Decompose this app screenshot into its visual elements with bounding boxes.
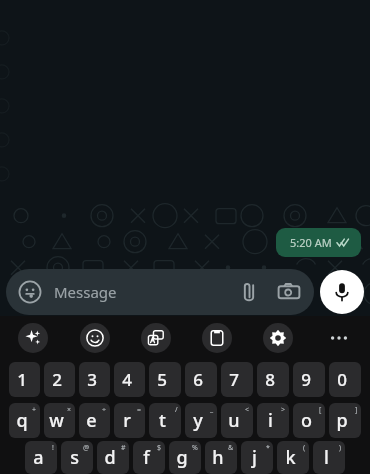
- staticText: w: [49, 408, 64, 433]
- staticText: *: [266, 443, 270, 453]
- staticText: 8: [265, 368, 275, 391]
- staticText: 5:20 AM: [290, 235, 332, 250]
- button[interactable]: 7: [221, 362, 253, 397]
- staticText: e: [86, 408, 97, 433]
- staticText: 5: [157, 368, 167, 391]
- button[interactable]: w: [44, 403, 75, 438]
- staticText: !: [52, 443, 54, 453]
- staticText: 6: [193, 368, 203, 391]
- button[interactable]: q: [9, 403, 40, 438]
- button[interactable]: Translate: [141, 323, 171, 353]
- staticText: 1: [17, 368, 27, 391]
- staticText: (: [303, 443, 306, 453]
- staticText: y: [193, 408, 203, 433]
- button[interactable]: i: [257, 403, 289, 438]
- button[interactable]: y: [185, 403, 217, 438]
- button[interactable]: o: [293, 403, 325, 438]
- staticText: t: [159, 408, 166, 433]
- staticText: l: [324, 445, 329, 470]
- button[interactable]: 8: [257, 362, 289, 397]
- staticText: 2: [52, 368, 62, 391]
- staticText: %: [192, 443, 198, 453]
- button[interactable]: 5:20 AM: [276, 228, 361, 257]
- button[interactable]: 4: [114, 362, 145, 397]
- button[interactable]: k: [277, 441, 309, 474]
- button[interactable]: j: [241, 441, 273, 474]
- staticText: 7: [229, 368, 239, 391]
- staticText: r: [123, 408, 131, 433]
- button[interactable]: Camera: [276, 279, 302, 305]
- staticText: ): [339, 443, 342, 453]
- button[interactable]: Stickers: [6, 269, 314, 315]
- button[interactable]: More options: [324, 323, 354, 353]
- staticText: g: [176, 445, 188, 470]
- staticText: p: [336, 408, 348, 433]
- staticText: /: [175, 405, 178, 415]
- button[interactable]: 2: [44, 362, 75, 397]
- staticText: k: [285, 445, 296, 470]
- staticText: [: [319, 405, 322, 415]
- button[interactable]: r: [114, 403, 145, 438]
- button[interactable]: 3: [79, 362, 110, 397]
- button[interactable]: Attach: [236, 279, 262, 305]
- button[interactable]: p: [329, 403, 361, 438]
- button[interactable]: Settings: [263, 323, 293, 353]
- button[interactable]: 9: [293, 362, 325, 397]
- button[interactable]: AI assist: [18, 323, 48, 353]
- button[interactable]: Emoji: [80, 323, 110, 353]
- staticText: >: [281, 405, 286, 415]
- staticText: 4: [122, 368, 132, 391]
- staticText: +: [32, 405, 37, 415]
- button[interactable]: g: [169, 441, 201, 474]
- button[interactable]: Voice message: [320, 270, 364, 314]
- staticText: q: [16, 408, 28, 433]
- staticText: _: [210, 405, 214, 415]
- staticText: $: [157, 443, 162, 453]
- button[interactable]: t: [149, 403, 181, 438]
- button[interactable]: Clipboard: [202, 323, 232, 353]
- staticText: &: [228, 443, 234, 453]
- staticText: Message: [54, 282, 117, 302]
- button[interactable]: f: [133, 441, 165, 474]
- button[interactable]: 1: [9, 362, 40, 397]
- staticText: a: [33, 445, 44, 470]
- staticText: ]: [355, 405, 358, 415]
- staticText: @: [83, 443, 90, 453]
- button[interactable]: u: [221, 403, 253, 438]
- staticText: i: [268, 408, 273, 433]
- staticText: o: [301, 408, 312, 433]
- staticText: ÷: [102, 405, 107, 415]
- button[interactable]: Stickers: [18, 280, 42, 304]
- button[interactable]: 6: [185, 362, 217, 397]
- staticText: s: [70, 445, 79, 470]
- button[interactable]: h: [205, 441, 237, 474]
- button[interactable]: e: [79, 403, 110, 438]
- staticText: <: [245, 405, 250, 415]
- staticText: j: [252, 445, 257, 470]
- staticText: 3: [87, 368, 97, 391]
- staticText: d: [104, 445, 116, 470]
- staticText: =: [137, 405, 142, 415]
- staticText: u: [228, 408, 240, 433]
- staticText: 9: [301, 368, 311, 391]
- button[interactable]: a: [25, 441, 57, 474]
- staticText: ×: [67, 405, 72, 415]
- staticText: f: [143, 445, 150, 470]
- button[interactable]: d: [97, 441, 129, 474]
- button[interactable]: 0: [329, 362, 361, 397]
- button[interactable]: s: [61, 441, 93, 474]
- staticText: h: [212, 445, 224, 470]
- button[interactable]: l: [313, 441, 345, 474]
- button[interactable]: 5: [149, 362, 181, 397]
- staticText: 0: [337, 368, 347, 391]
- staticText: #: [121, 443, 126, 453]
